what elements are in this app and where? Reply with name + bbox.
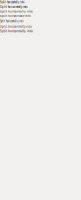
- staticText: Split horizontally into: [0, 5, 28, 9]
- staticText: Split horizontally into: [0, 18, 23, 23]
- staticText: Split horizontally into: [0, 14, 31, 17]
- staticText: Split horizontally into: [0, 10, 33, 13]
- staticText: Split horizontally into: [0, 0, 24, 4]
- staticText: Split horizontally into: [0, 29, 33, 33]
- staticText: Split horizontally into: [0, 25, 32, 28]
